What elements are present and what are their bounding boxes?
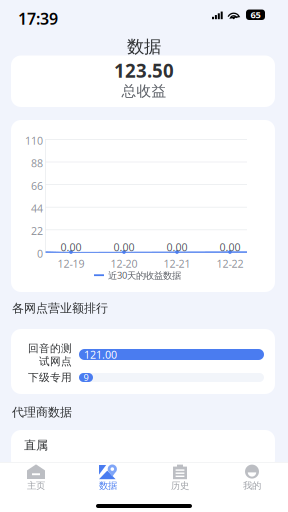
button[interactable]: 历史 (144, 462, 216, 496)
staticText: 数据 (127, 36, 161, 57)
staticText: 近30天的收益数据 (108, 269, 181, 281)
staticText: 0.00 (113, 240, 134, 254)
staticText: 0.00 (166, 240, 187, 254)
staticText: 17:39 (18, 8, 58, 29)
staticText: 66 (31, 179, 43, 193)
staticText: 0.00 (219, 240, 240, 254)
button[interactable]: 数据 (72, 462, 144, 496)
staticText: 110 (25, 133, 43, 148)
staticText: 下级专用 (28, 371, 72, 384)
staticText: 历史 (171, 480, 189, 491)
staticText: 试网点 (39, 355, 72, 368)
staticText: 回音的测 (28, 342, 72, 355)
staticText: 22 (31, 224, 43, 238)
staticText: 总收益 (121, 82, 166, 100)
staticText: 44 (31, 201, 43, 215)
staticText: 主页 (27, 480, 45, 491)
staticText: 代理商数据 (12, 405, 72, 420)
staticText: 12-21 (163, 256, 190, 271)
staticText: 12-19 (57, 256, 84, 271)
staticText: 各网点营业额排行 (12, 301, 108, 316)
button[interactable]: 主页 (0, 462, 72, 496)
staticText: 直属 (24, 438, 48, 453)
staticText: 88 (31, 156, 43, 170)
staticText: 121.00 (84, 347, 117, 362)
staticText: 我的 (243, 480, 261, 491)
staticText: 数据 (99, 480, 117, 491)
staticText: 9 (83, 371, 88, 384)
staticText: 0.00 (60, 240, 81, 254)
button[interactable]: 我的 (216, 462, 288, 496)
staticText: 12-22 (216, 256, 243, 271)
staticText: 123.50 (114, 58, 174, 83)
staticText: 65 (250, 9, 260, 21)
staticText: 0 (37, 246, 43, 261)
staticText: 12-20 (110, 256, 137, 271)
